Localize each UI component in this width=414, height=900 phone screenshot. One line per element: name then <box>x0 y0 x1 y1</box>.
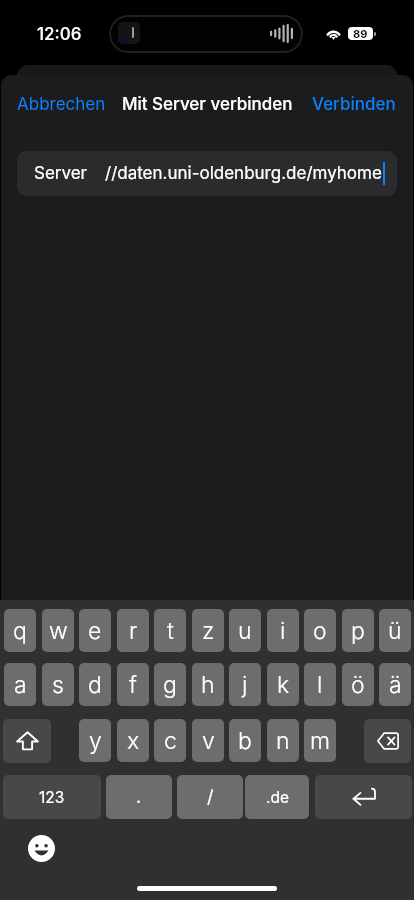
staticText: t <box>167 617 174 645</box>
staticText: d <box>88 671 102 699</box>
button[interactable]: l <box>304 663 336 706</box>
button[interactable]: m <box>304 719 336 762</box>
staticText: w <box>49 617 68 645</box>
staticText: r <box>129 617 138 645</box>
button[interactable]: p <box>342 609 374 652</box>
button[interactable]: z <box>192 609 224 652</box>
staticText: ü <box>388 617 402 645</box>
staticText: x <box>127 727 140 755</box>
staticText: //daten.uni-oldenburg.de/myhome <box>105 163 382 184</box>
staticText: Verbinden <box>312 94 396 115</box>
button[interactable]: ö <box>342 663 374 706</box>
button[interactable]: o <box>304 609 336 652</box>
button[interactable]: i <box>267 609 299 652</box>
button[interactable]: t <box>154 609 186 652</box>
staticText: a <box>14 671 27 699</box>
button[interactable]: Return <box>315 775 412 819</box>
staticText: v <box>202 727 215 755</box>
staticText: y <box>89 727 102 755</box>
button[interactable]: x <box>117 719 149 762</box>
button[interactable]: Verbinden <box>300 85 408 124</box>
button[interactable]: n <box>267 719 299 762</box>
staticText: j <box>242 671 248 699</box>
staticText: / <box>207 786 214 808</box>
staticText: k <box>277 671 290 699</box>
staticText: .de <box>266 788 289 807</box>
button[interactable]: 123 <box>3 775 101 819</box>
button[interactable]: q <box>4 609 36 652</box>
button[interactable]: b <box>229 719 261 762</box>
button[interactable]: a <box>4 663 36 706</box>
button[interactable]: Server <box>17 151 397 196</box>
button[interactable]: d <box>79 663 111 706</box>
button[interactable]: y <box>79 719 111 762</box>
button[interactable]: . <box>106 775 172 819</box>
staticText: b <box>238 727 252 755</box>
button[interactable]: Abbrechen <box>5 85 118 124</box>
staticText: g <box>163 671 177 699</box>
button[interactable]: ü <box>379 609 411 652</box>
staticText: e <box>88 617 102 645</box>
staticText: h <box>201 671 215 699</box>
staticText: o <box>313 617 327 645</box>
staticText: f <box>129 671 137 699</box>
staticText: s <box>52 671 64 699</box>
staticText: i <box>280 617 286 645</box>
staticText: 123 <box>39 788 65 807</box>
button[interactable]: s <box>42 663 74 706</box>
staticText: m <box>310 727 331 755</box>
staticText: 12:06 <box>37 24 82 45</box>
button[interactable]: / <box>177 775 243 819</box>
button[interactable]: w <box>42 609 74 652</box>
button[interactable]: j <box>229 663 261 706</box>
staticText: c <box>164 727 177 755</box>
staticText: 89 <box>353 27 368 40</box>
staticText: u <box>238 617 252 645</box>
staticText: Abbrechen <box>17 94 106 115</box>
button[interactable]: Shift <box>3 719 51 763</box>
button[interactable]: k <box>267 663 299 706</box>
button[interactable]: e <box>79 609 111 652</box>
staticText: q <box>13 617 27 645</box>
button[interactable]: h <box>192 663 224 706</box>
staticText: Mit Server verbinden <box>122 94 293 115</box>
button[interactable]: c <box>154 719 186 762</box>
button[interactable]: Emoji <box>26 833 56 863</box>
button[interactable]: ä <box>379 663 411 706</box>
button[interactable]: f <box>117 663 149 706</box>
button[interactable]: Delete <box>364 719 411 763</box>
staticText: ä <box>389 671 402 699</box>
button[interactable]: u <box>229 609 261 652</box>
button[interactable]: g <box>154 663 186 706</box>
staticText: n <box>276 727 290 755</box>
button[interactable]: v <box>192 719 224 762</box>
staticText: p <box>351 617 365 645</box>
staticText: ö <box>351 671 365 699</box>
button[interactable]: r <box>117 609 149 652</box>
staticText: l <box>317 671 323 699</box>
staticText: . <box>136 786 142 808</box>
button[interactable]: .de <box>245 775 309 819</box>
staticText: z <box>202 617 215 645</box>
staticText: Server <box>34 163 88 184</box>
